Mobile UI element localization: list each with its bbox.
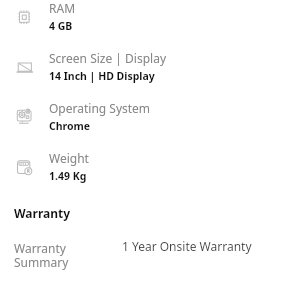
staticText: 14 Inch | HD Display (49, 69, 155, 83)
staticText: 4 GB (49, 19, 73, 33)
other: Weight (16, 159, 33, 176)
staticText: Warranty Summary (14, 240, 69, 271)
button[interactable]: Display (0, 50, 300, 100)
button[interactable]: Operating system (0, 100, 300, 150)
staticText: 1.49 Kg (49, 169, 87, 183)
other: Memory (16, 9, 33, 26)
staticText: 1 Year Onsite Warranty (122, 238, 252, 254)
button[interactable]: Weight (0, 150, 300, 200)
other: Operating system (16, 109, 33, 126)
staticText: Weight (49, 150, 89, 166)
staticText: Chrome (49, 119, 91, 133)
button[interactable]: Warranty Summary (0, 234, 300, 278)
button[interactable]: Memory (0, 0, 300, 50)
staticText: Operating System (49, 100, 151, 116)
staticText: Screen Size | Display (49, 50, 167, 66)
staticText: Warranty (14, 205, 71, 221)
other: Display (16, 59, 33, 76)
staticText: RAM (49, 0, 76, 16)
button[interactable]: Warranty (0, 198, 300, 234)
